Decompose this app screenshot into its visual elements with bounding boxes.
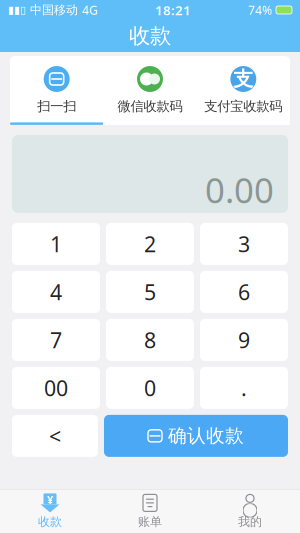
staticText: 扫一扫 (37, 98, 76, 114)
staticText: < (49, 422, 61, 450)
staticText: 4G (82, 2, 98, 18)
button[interactable]: 9 (200, 319, 288, 361)
staticText: 收款 (38, 514, 62, 529)
button[interactable]: 微信收款码 (103, 56, 197, 122)
button[interactable]: 8 (106, 319, 194, 361)
staticText: 1 (50, 230, 62, 258)
staticText: 支付宝收款码 (204, 98, 282, 114)
button[interactable]: 1 (12, 223, 100, 265)
staticText: . (241, 374, 247, 402)
staticText: 微信收款码 (117, 98, 182, 114)
button[interactable]: 我的 (200, 489, 300, 533)
button[interactable]: 支 (197, 56, 290, 122)
button[interactable]: 7 (12, 319, 100, 361)
button[interactable]: 4 (12, 271, 100, 313)
button[interactable]: 确认收款 (104, 415, 288, 457)
staticText: 0 (144, 374, 156, 402)
staticText: ¥ (47, 493, 53, 507)
staticText: 9 (238, 326, 250, 354)
staticText: 2 (144, 230, 156, 258)
staticText: 74% (248, 2, 272, 18)
button[interactable]: < (12, 415, 98, 457)
button[interactable]: . (200, 367, 288, 409)
staticText: 我的 (238, 514, 262, 529)
button[interactable]: 5 (106, 271, 194, 313)
staticText: 6 (238, 278, 250, 306)
button[interactable]: 0 (106, 367, 194, 409)
staticText: 0.00 (205, 167, 274, 213)
staticText: 账单 (138, 514, 162, 529)
button[interactable]: 2 (106, 223, 194, 265)
button[interactable]: 账单 (100, 489, 200, 533)
staticText: ▮▮▯ (8, 4, 26, 16)
staticText: 18:21 (155, 1, 191, 19)
button[interactable]: ¥ (0, 489, 100, 533)
button[interactable]: 3 (200, 223, 288, 265)
button[interactable]: 扫一扫 (10, 56, 103, 122)
staticText: 支 (233, 67, 253, 91)
staticText: 收款 (129, 23, 171, 49)
staticText: 4 (50, 278, 62, 306)
staticText: 中国移动 (30, 3, 78, 17)
staticText: 7 (50, 326, 62, 354)
staticText: 3 (238, 230, 250, 258)
staticText: 5 (144, 278, 156, 306)
staticText: 00 (44, 374, 68, 402)
staticText: 确认收款 (168, 424, 244, 447)
staticText: 8 (144, 326, 156, 354)
button[interactable]: 6 (200, 271, 288, 313)
button[interactable]: 00 (12, 367, 100, 409)
